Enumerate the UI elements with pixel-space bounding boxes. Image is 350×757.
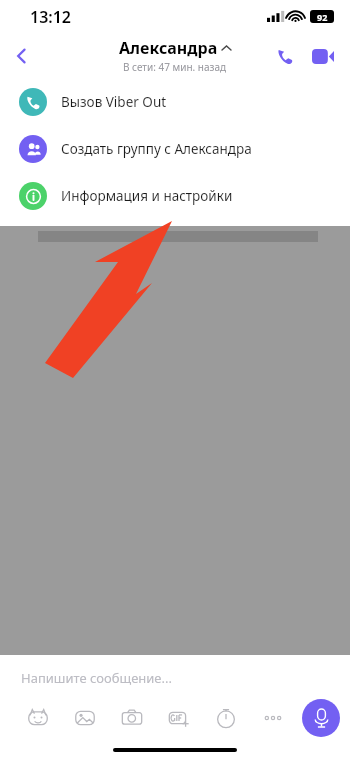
button[interactable]: Timer [202, 699, 249, 737]
button[interactable]: Создать группу с Александра [0, 125, 350, 172]
staticText: Создать группу с Александра [61, 140, 252, 158]
staticText: В сети: 47 мин. назад [123, 60, 227, 74]
staticText: 92 [317, 11, 328, 23]
staticText: Информация и настройки [61, 187, 233, 205]
button[interactable]: Вызов Viber Out [0, 78, 350, 125]
button[interactable]: More [249, 699, 296, 737]
button[interactable]: Back [0, 34, 44, 78]
button[interactable]: Voice message [302, 699, 340, 737]
button[interactable]: GIF [155, 699, 202, 737]
button[interactable]: Информация и настройки [0, 172, 350, 219]
button[interactable]: Camera [108, 699, 155, 737]
staticText: 13:12 [30, 6, 72, 28]
button[interactable]: Video call [306, 39, 340, 73]
staticText: Александра [119, 37, 218, 59]
button[interactable]: Stickers [14, 699, 61, 737]
button[interactable]: Call [268, 39, 302, 73]
button[interactable]: Gallery [61, 699, 108, 737]
staticText: Вызов Viber Out [61, 93, 167, 111]
staticText: Напишите сообщение... [21, 669, 172, 687]
button[interactable]: Александра [119, 37, 231, 74]
